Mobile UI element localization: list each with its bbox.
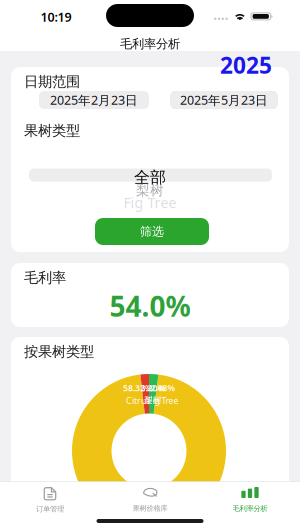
- staticText: 日期范围: [24, 73, 80, 90]
- staticText: 订单管理: [36, 504, 64, 513]
- staticText: 果树价格库: [132, 504, 167, 513]
- button[interactable]: 毛利率分析: [90, 35, 210, 53]
- staticText: 全部: [134, 168, 166, 187]
- button[interactable]: 订单管理: [0, 487, 100, 527]
- staticText: Citrus: [126, 395, 150, 406]
- staticText: 梨树: [144, 395, 162, 405]
- staticText: 筛选: [140, 224, 164, 239]
- staticText: 58.32%: [123, 382, 153, 394]
- button[interactable]: 2025年5月23日: [170, 91, 278, 109]
- staticText: 2025年5月23日: [180, 92, 268, 108]
- staticText: 54.0%: [109, 287, 190, 325]
- staticText: 果树类型: [24, 122, 80, 139]
- button[interactable]: 毛利率分析: [200, 487, 300, 527]
- staticText: 毛利率分析: [120, 36, 180, 52]
- staticText: 3.20%: [140, 382, 165, 394]
- staticText: 2025: [220, 50, 272, 80]
- staticText: 10:19: [40, 9, 71, 25]
- staticText: 按果树类型: [24, 343, 94, 360]
- button[interactable]: 筛选: [95, 218, 209, 245]
- staticText: Fig Tree: [123, 193, 176, 212]
- staticText: 2025年2月23日: [50, 92, 138, 108]
- button[interactable]: 果树价格库: [100, 487, 200, 527]
- staticText: Fig Tree: [147, 395, 178, 406]
- staticText: 梨树: [136, 182, 164, 199]
- staticText: 2.48%: [150, 382, 175, 394]
- staticText: 毛利率分析: [232, 504, 267, 513]
- button[interactable]: 2025年2月23日: [39, 91, 149, 109]
- staticText: 毛利率: [24, 269, 66, 286]
